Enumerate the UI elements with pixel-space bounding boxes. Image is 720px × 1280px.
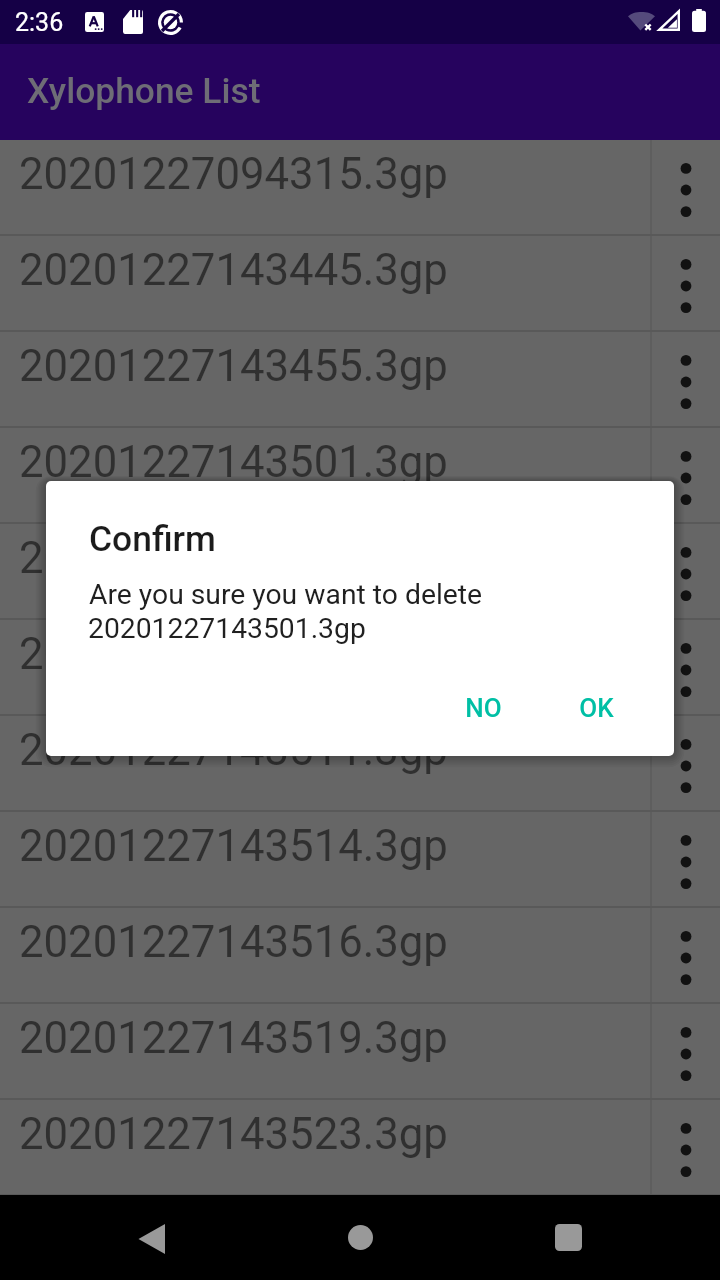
staticText: 20201227143508.3gp (19, 628, 448, 679)
button[interactable]: More options (652, 140, 720, 234)
staticText: 20201227094315.3gp (19, 148, 448, 199)
button[interactable]: More options (652, 1100, 720, 1194)
button[interactable]: Back (90, 1195, 210, 1280)
staticText: 20201227143523.3gp (19, 1108, 448, 1159)
button[interactable]: 20201227143511.3gp (0, 716, 650, 810)
button[interactable]: Home (300, 1195, 420, 1280)
button[interactable]: 20201227143516.3gp (0, 908, 650, 1002)
button[interactable]: More options (652, 428, 720, 522)
button[interactable]: More options (652, 332, 720, 426)
staticText: Confirm (89, 518, 216, 559)
button[interactable]: OK (563, 681, 630, 735)
staticText: 20201227143501.3gp (88, 612, 366, 645)
staticText: 20201227143516.3gp (19, 916, 448, 967)
staticText: 20201227143514.3gp (19, 820, 448, 871)
button[interactable]: More options (652, 1004, 720, 1098)
staticText: Are you sure you want to delete (89, 578, 483, 611)
button[interactable]: More options (652, 812, 720, 906)
staticText: 20201227143511.3gp (19, 724, 448, 775)
button[interactable]: 20201227143501.3gp (0, 428, 650, 522)
button[interactable]: 20201227143505.3gp (0, 524, 650, 618)
button[interactable]: More options (652, 236, 720, 330)
button[interactable]: 20201227143519.3gp (0, 1004, 650, 1098)
staticText: 20201227143505.3gp (19, 532, 448, 583)
staticText: 20201227143519.3gp (19, 1012, 448, 1063)
staticText: 20201227143455.3gp (19, 340, 448, 391)
button[interactable]: 20201227143508.3gp (0, 620, 650, 714)
button[interactable]: NO (449, 681, 518, 735)
button[interactable]: 20201227143455.3gp (0, 332, 650, 426)
button[interactable]: More options (652, 908, 720, 1002)
staticText: OK (579, 693, 614, 723)
button[interactable]: More options (652, 716, 720, 810)
button[interactable]: More options (652, 524, 720, 618)
button[interactable]: 20201227143445.3gp (0, 236, 650, 330)
staticText: 20201227143445.3gp (19, 244, 448, 295)
button[interactable]: 20201227143514.3gp (0, 812, 650, 906)
staticText: Xylophone List (27, 70, 261, 111)
button[interactable]: 20201227094315.3gp (0, 140, 650, 234)
button[interactable]: 20201227143523.3gp (0, 1100, 650, 1194)
button[interactable]: More options (652, 620, 720, 714)
button[interactable]: Recent apps (508, 1195, 628, 1280)
staticText: 20201227143501.3gp (19, 436, 448, 487)
staticText: 2:36 (15, 8, 64, 37)
staticText: NO (465, 693, 502, 723)
